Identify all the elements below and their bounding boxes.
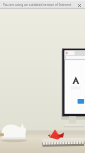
staticText: You are using an outdated version of Int… <box>3 3 76 7</box>
button[interactable]: Dismiss warning <box>76 2 82 8</box>
button[interactable]: You are using an outdated version of Int… <box>0 0 85 9</box>
button[interactable] <box>0 9 85 153</box>
